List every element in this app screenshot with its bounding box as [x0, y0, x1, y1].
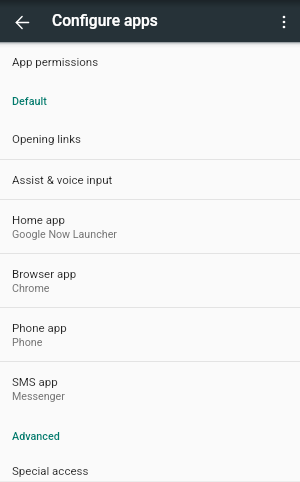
staticText: Home app [12, 213, 65, 226]
button[interactable]: SMS app [0, 362, 300, 415]
staticText: Advanced [12, 430, 60, 443]
button[interactable]: Opening links [0, 120, 300, 159]
staticText: Messenger [12, 390, 65, 403]
button[interactable]: App permissions [0, 42, 300, 80]
button[interactable]: Phone app [0, 308, 300, 361]
button[interactable]: Home app [0, 200, 300, 253]
staticText: Chrome [12, 282, 50, 295]
staticText: Phone [12, 336, 43, 349]
staticText: Browser app [12, 267, 77, 280]
staticText: Google Now Launcher [12, 228, 117, 241]
button[interactable]: Back [0, 0, 42, 42]
staticText: Special access [12, 464, 89, 477]
staticText: Configure apps [52, 12, 158, 30]
staticText: SMS app [12, 375, 58, 388]
staticText: Opening links [12, 132, 81, 145]
staticText: App permissions [12, 55, 99, 68]
button[interactable]: Special access [0, 458, 300, 482]
staticText: Default [12, 95, 47, 108]
staticText: Assist & voice input [12, 173, 113, 186]
staticText: Phone app [12, 321, 67, 334]
button[interactable]: Browser app [0, 254, 300, 307]
button[interactable]: More options [268, 5, 300, 37]
button[interactable]: Assist & voice input [0, 160, 300, 199]
